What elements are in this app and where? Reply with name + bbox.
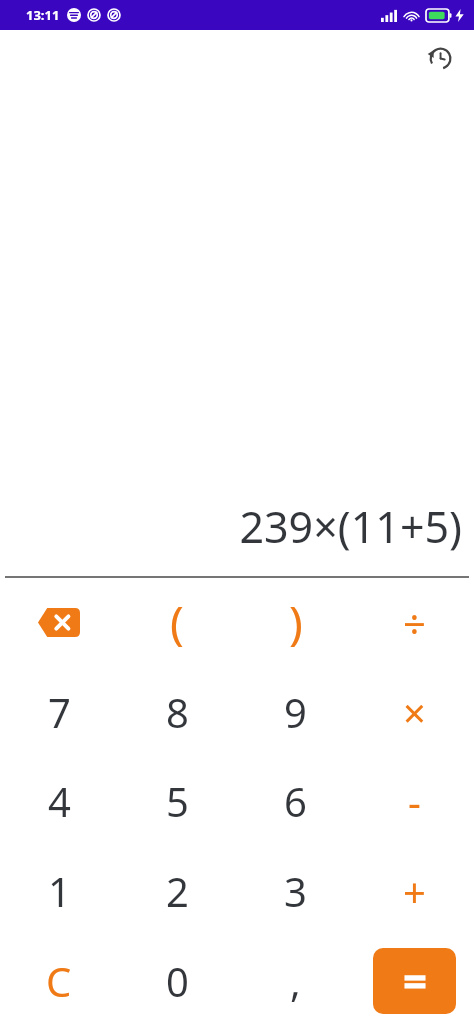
staticText: 3 [284, 864, 307, 918]
staticText: 1 [48, 864, 71, 918]
button[interactable]: 2 [118, 846, 236, 936]
staticText: 9 [284, 685, 307, 739]
button[interactable]: - [355, 756, 474, 846]
staticText: ) [289, 591, 303, 654]
staticText: ( [170, 591, 184, 654]
staticText: 5 [166, 774, 189, 828]
button[interactable]: History [418, 37, 460, 79]
button[interactable]: 9 [236, 667, 355, 756]
button[interactable]: + [355, 846, 474, 936]
button[interactable]: , [236, 936, 355, 1026]
button[interactable]: C [0, 936, 118, 1026]
button[interactable]: 0 [118, 936, 236, 1026]
button[interactable] [373, 948, 456, 1014]
staticText: C [46, 954, 72, 1008]
button[interactable]: × [355, 667, 474, 756]
staticText: , [290, 954, 301, 1008]
button[interactable]: Backspace [0, 578, 118, 667]
button[interactable]: 5 [118, 756, 236, 846]
button[interactable]: 3 [236, 846, 355, 936]
button[interactable]: 7 [0, 667, 118, 756]
staticText: 6 [284, 774, 307, 828]
staticText: ÷ [403, 596, 426, 650]
staticText: 13:11 [26, 6, 60, 24]
button[interactable]: 8 [118, 667, 236, 756]
staticText: 0 [166, 954, 189, 1008]
staticText: - [408, 774, 421, 828]
button[interactable]: ÷ [355, 578, 474, 667]
button[interactable]: 6 [236, 756, 355, 846]
staticText: 4 [48, 774, 71, 828]
button[interactable]: 4 [0, 756, 118, 846]
staticText: 2 [166, 864, 189, 918]
button[interactable]: ) [236, 578, 355, 667]
staticText: × [403, 685, 426, 739]
staticText: 7 [48, 685, 71, 739]
button[interactable]: 1 [0, 846, 118, 936]
staticText: 8 [166, 685, 189, 739]
button[interactable]: ( [118, 578, 236, 667]
staticText: + [403, 864, 426, 918]
staticText: 239×(11+5) [239, 497, 462, 556]
